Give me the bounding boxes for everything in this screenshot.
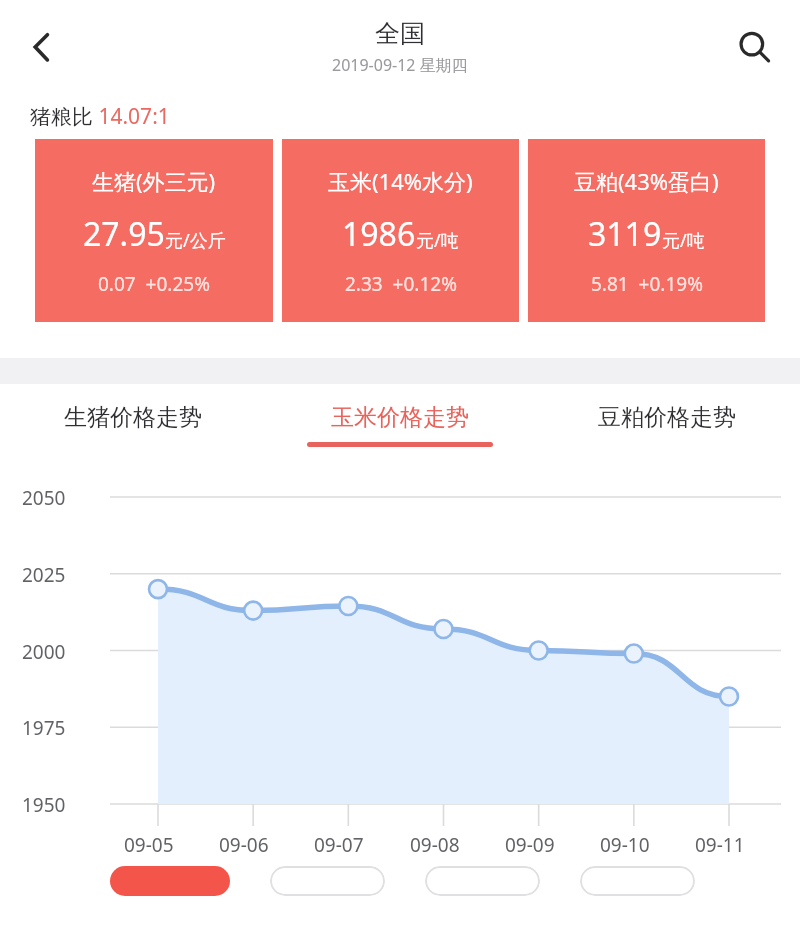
- staticText: 09-07: [314, 832, 364, 858]
- staticText: 2019-09-12 星期四: [332, 54, 468, 76]
- staticText: 2.33 +0.12%: [345, 271, 457, 297]
- button[interactable]: [580, 866, 695, 896]
- button[interactable]: [425, 866, 540, 896]
- button[interactable]: 生猪(外三元): [35, 139, 273, 322]
- staticText: 0.07 +0.25%: [98, 271, 210, 297]
- button[interactable]: Back: [14, 19, 70, 75]
- staticText: 09-08: [410, 832, 460, 858]
- staticText: 元/吨: [416, 228, 459, 253]
- staticText: 元/吨: [662, 228, 705, 253]
- staticText: 3119: [588, 212, 662, 256]
- button[interactable]: [110, 866, 230, 896]
- staticText: 元/公斤: [165, 228, 226, 253]
- staticText: 2025: [22, 562, 66, 588]
- staticText: 玉米价格走势: [331, 403, 469, 432]
- button[interactable]: 生猪价格走势: [0, 384, 266, 466]
- staticText: 5.81 +0.19%: [591, 271, 703, 297]
- button[interactable]: 豆粕价格走势: [533, 384, 800, 466]
- button[interactable]: Search: [726, 19, 782, 75]
- staticText: 27.95: [83, 212, 165, 256]
- staticText: 09-05: [124, 832, 174, 858]
- staticText: 09-11: [695, 832, 745, 858]
- staticText: 豆粕(43%蛋白): [574, 166, 719, 196]
- staticText: 2050: [22, 485, 66, 511]
- button[interactable]: 玉米(14%水分): [282, 139, 519, 322]
- staticText: 玉米(14%水分): [328, 166, 473, 196]
- button[interactable]: 豆粕(43%蛋白): [528, 139, 765, 322]
- button[interactable]: [270, 866, 385, 896]
- staticText: 09-06: [219, 832, 269, 858]
- staticText: 生猪(外三元): [92, 166, 216, 196]
- staticText: 2000: [22, 639, 66, 665]
- staticText: 全国: [375, 18, 425, 49]
- staticText: 1950: [22, 792, 66, 818]
- button[interactable]: 玉米价格走势: [266, 384, 533, 466]
- staticText: 豆粕价格走势: [598, 403, 736, 432]
- staticText: 1986: [342, 212, 416, 256]
- staticText: 1975: [22, 715, 66, 741]
- staticText: 猪粮比 14.07:1: [30, 102, 170, 131]
- staticText: 09-10: [600, 832, 650, 858]
- staticText: 09-09: [505, 832, 555, 858]
- staticText: 生猪价格走势: [64, 403, 202, 432]
